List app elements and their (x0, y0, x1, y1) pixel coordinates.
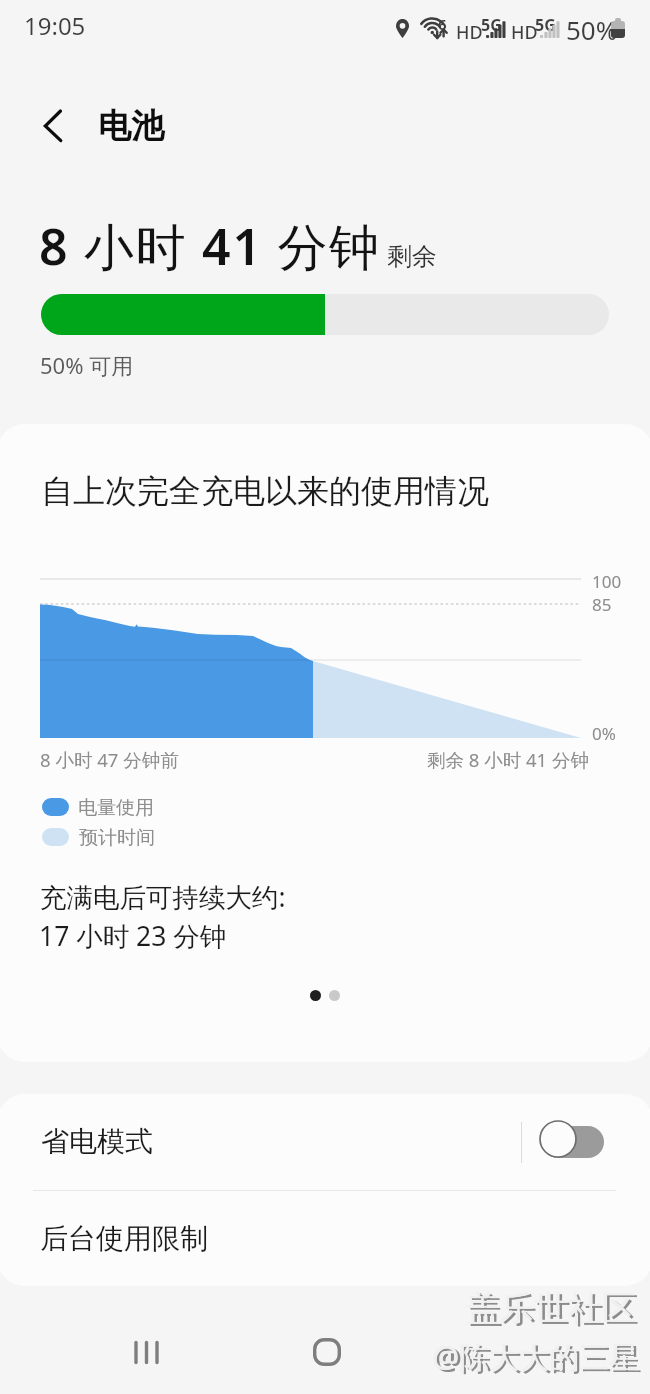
staticText: HD (511, 20, 538, 45)
staticText: 19:05 (24, 9, 86, 42)
staticText: 自上次完全充电以来的使用情况 (41, 471, 489, 511)
staticText: 电池 (98, 105, 164, 147)
staticText: 剩余 8 小时 41 分钟 (427, 747, 589, 772)
staticText: 6 (438, 14, 447, 34)
staticText: 0% (592, 722, 616, 745)
staticText: 5G (481, 14, 502, 36)
staticText: @陈大大的三星 (432, 1336, 639, 1377)
staticText: 盖乐世社区 (469, 1289, 639, 1332)
staticText: 省电模式 (41, 1124, 153, 1159)
staticText: 剩余 (387, 241, 437, 272)
staticText: 8 小时 47 分钟前 (40, 747, 179, 772)
staticText: 5G (535, 14, 556, 36)
button[interactable] (0, 1094, 650, 1191)
staticText: 电量使用 (78, 796, 154, 820)
staticText: 100 (592, 570, 622, 593)
staticText: 后台使用限制 (40, 1221, 208, 1256)
button[interactable]: Back (480, 1327, 536, 1377)
staticText: @陈大大的三星 (435, 1338, 642, 1379)
button[interactable]: Recent apps (118, 1327, 174, 1377)
staticText: 85 (592, 593, 612, 616)
staticText: 充满电后可持续大约: (40, 879, 286, 915)
button[interactable]: Home (299, 1327, 355, 1377)
staticText: 50% (566, 12, 618, 47)
button[interactable]: Back (28, 102, 80, 150)
button[interactable] (0, 1191, 650, 1285)
staticText: 8 小时 41 分钟 (39, 212, 381, 280)
staticText: HD (456, 20, 483, 45)
staticText: 17 小时 23 分钟 (39, 918, 227, 954)
staticText: 预计时间 (79, 826, 155, 850)
staticText: 盖乐世社区 (466, 1287, 636, 1330)
staticText: 50% 可用 (40, 350, 134, 380)
